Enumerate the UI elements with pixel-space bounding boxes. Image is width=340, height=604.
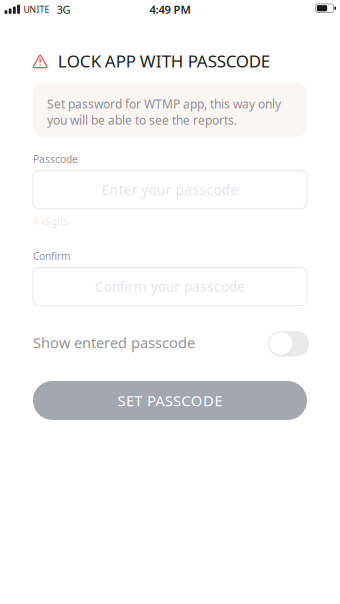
button[interactable]: Show entered passcode: [268, 331, 309, 356]
staticText: Confirm your passcode: [95, 277, 245, 296]
staticText: you will be able to see the reports.: [47, 112, 237, 128]
staticText: Enter your passcode: [101, 180, 238, 199]
staticText: 3G: [56, 2, 70, 17]
staticText: 4:49 PM: [149, 2, 190, 17]
staticText: Set password for WTMP app, this way only: [47, 96, 281, 112]
staticText: Show entered passcode: [33, 333, 195, 353]
staticText: UNITE: [23, 4, 49, 15]
staticText: LOCK APP WITH PASSCODE: [58, 49, 270, 73]
staticText: 4 digits: [33, 215, 69, 228]
staticText: SET PASSCODE: [118, 390, 222, 411]
staticText: Passcode: [33, 152, 78, 166]
button[interactable]: Enter your passcode: [33, 171, 307, 209]
button[interactable]: Confirm your passcode: [33, 267, 307, 305]
button[interactable]: SET PASSCODE: [33, 381, 307, 420]
staticText: Confirm: [33, 249, 70, 263]
